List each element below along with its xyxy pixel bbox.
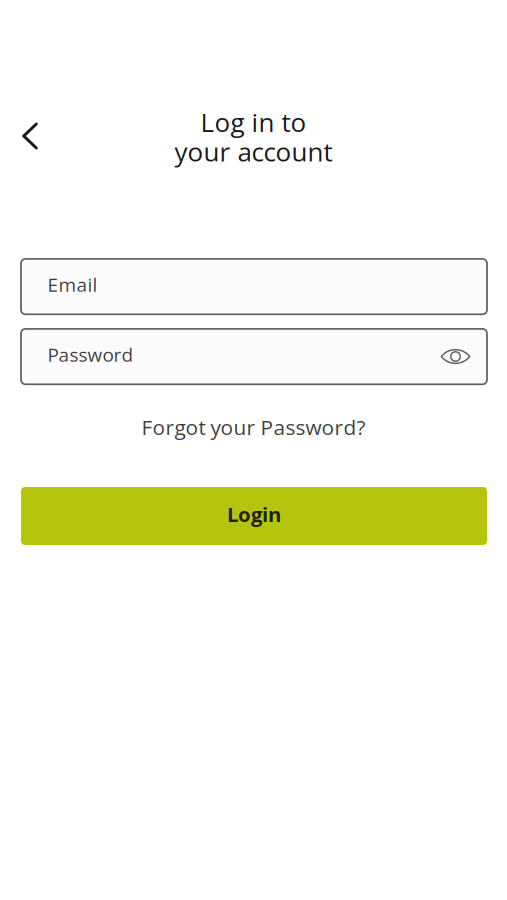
button[interactable]: Forgot your Password? (0, 408, 507, 446)
button[interactable]: Login (21, 487, 487, 545)
staticText: your account (174, 134, 332, 169)
button[interactable]: Back (7, 113, 53, 159)
staticText: Log in to (200, 104, 306, 140)
staticText: Email (48, 271, 98, 297)
staticText: Login (227, 500, 281, 528)
button[interactable]: Email (21, 259, 487, 314)
button[interactable]: Password (21, 329, 487, 384)
staticText: Forgot your Password? (141, 413, 365, 441)
button[interactable]: Show password (433, 334, 477, 378)
staticText: Password (48, 341, 134, 367)
